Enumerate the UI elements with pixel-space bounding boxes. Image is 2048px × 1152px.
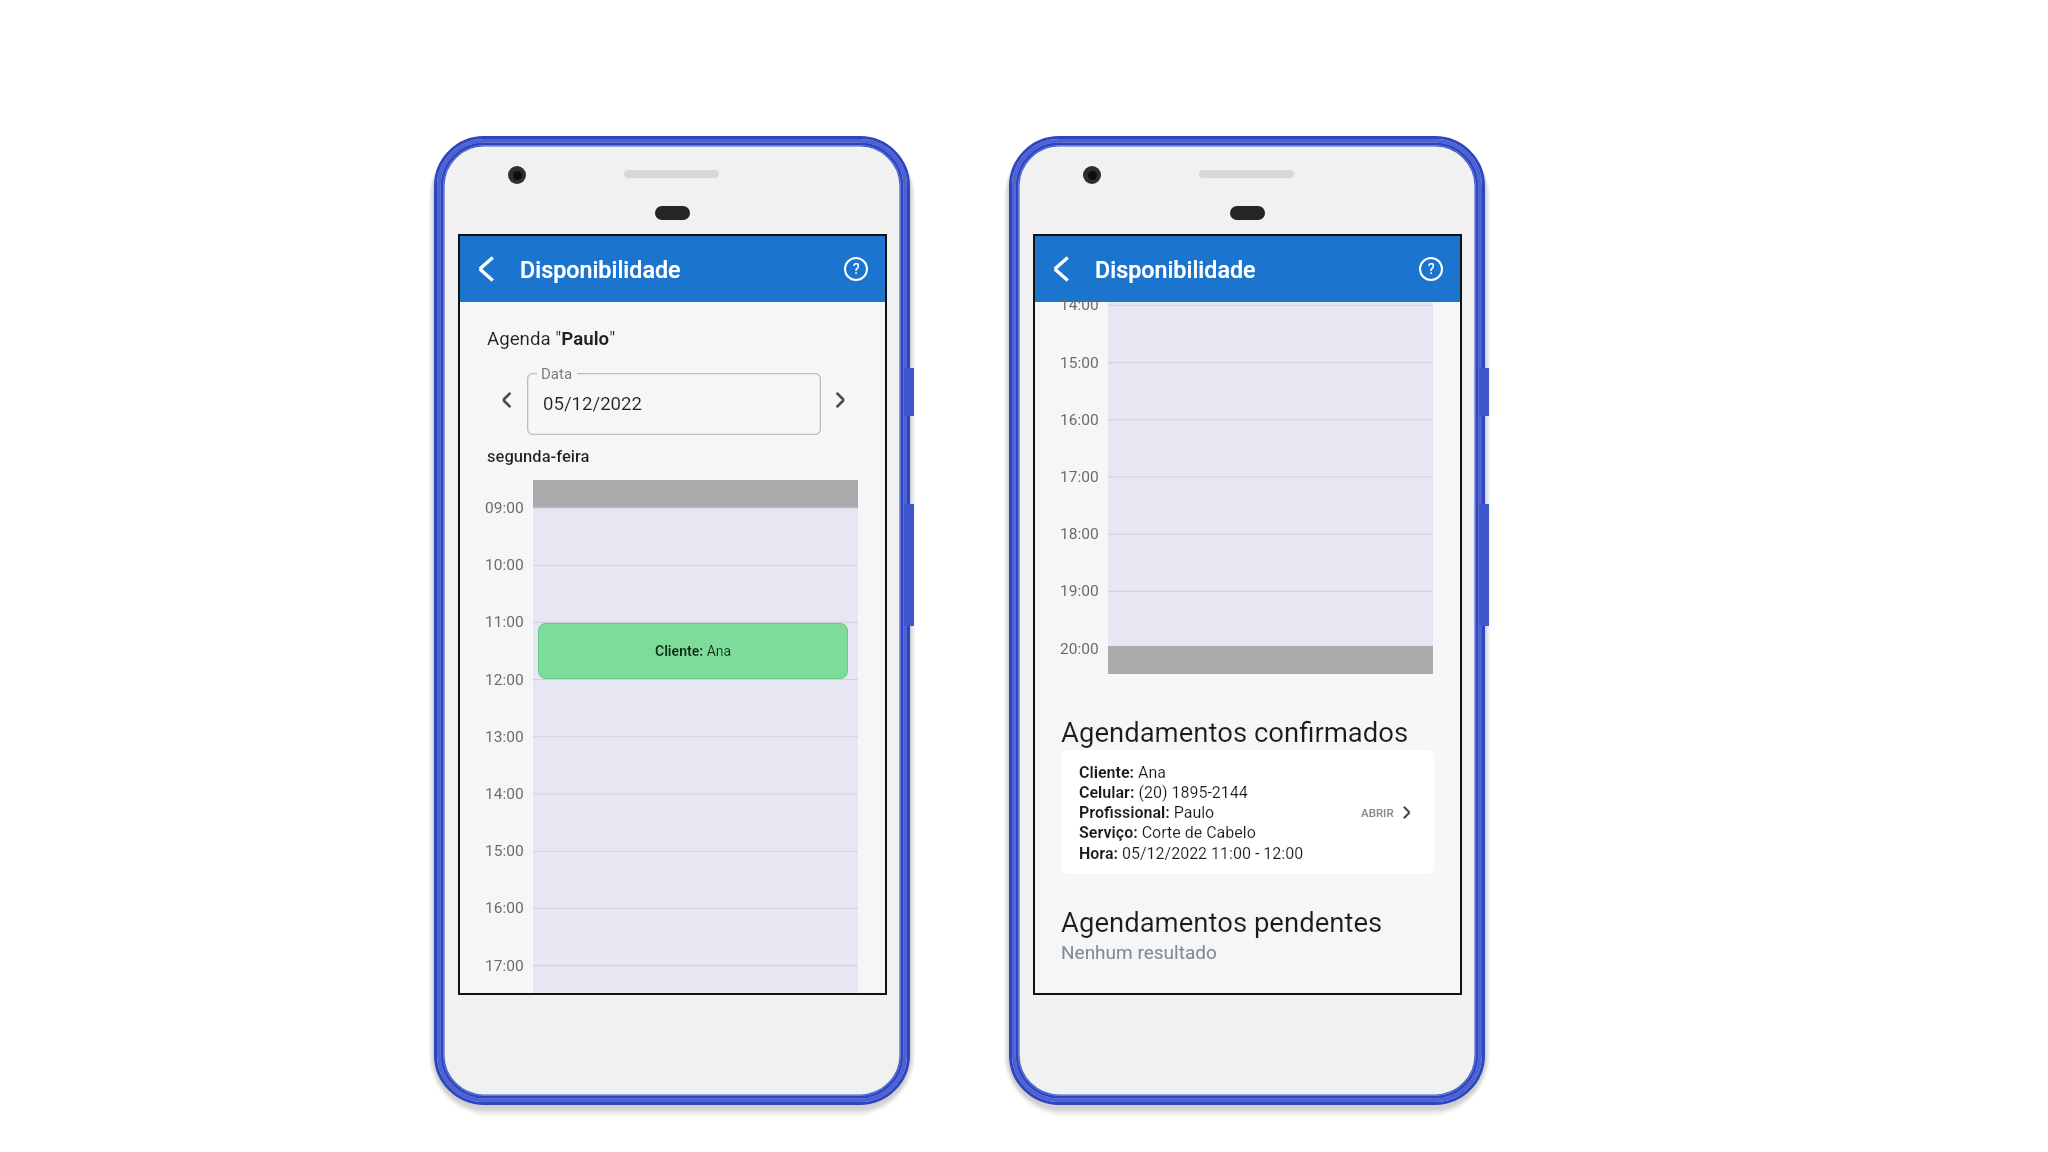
button[interactable]: Cliente: Ana bbox=[538, 623, 848, 679]
staticText: 18:00 bbox=[1060, 525, 1099, 543]
button[interactable]: Back bbox=[464, 247, 508, 291]
button[interactable]: 05/12/2022 bbox=[527, 373, 821, 435]
staticText: ABRIR bbox=[1361, 806, 1394, 819]
staticText: 17:00 bbox=[1060, 468, 1099, 486]
staticText: 14:00 bbox=[1060, 296, 1099, 314]
staticText: Disponibilidade bbox=[1095, 256, 1256, 283]
staticText: segunda-feira bbox=[487, 447, 590, 466]
staticText: Serviço: Corte de Cabelo bbox=[1079, 823, 1256, 842]
staticText: 10:00 bbox=[485, 556, 524, 574]
button[interactable]: Help bbox=[836, 249, 876, 289]
staticText: Data bbox=[541, 365, 573, 383]
staticText: 16:00 bbox=[1060, 411, 1099, 429]
staticText: 17:00 bbox=[485, 957, 524, 975]
staticText: Agendamentos pendentes bbox=[1061, 906, 1383, 938]
staticText: Profissional: Paulo bbox=[1079, 803, 1215, 822]
button[interactable]: Previous day bbox=[485, 378, 529, 422]
staticText: ? bbox=[853, 261, 860, 277]
staticText: Disponibilidade bbox=[520, 256, 681, 283]
staticText: 20:00 bbox=[1060, 640, 1099, 658]
button[interactable]: Back bbox=[1039, 247, 1083, 291]
staticText: Celular: (20) 1895-2144 bbox=[1079, 783, 1248, 802]
staticText: 12:00 bbox=[485, 671, 524, 689]
button[interactable]: Help bbox=[1411, 249, 1451, 289]
staticText: 19:00 bbox=[1060, 582, 1099, 600]
staticText: Cliente: Ana bbox=[655, 643, 732, 659]
button[interactable]: Cliente: Ana bbox=[1061, 750, 1434, 874]
button[interactable]: Next day bbox=[818, 378, 862, 422]
button[interactable]: ABRIR bbox=[1355, 797, 1434, 828]
staticText: ? bbox=[1428, 261, 1435, 277]
staticText: 14:00 bbox=[485, 785, 524, 803]
staticText: 15:00 bbox=[485, 842, 524, 860]
staticText: 16:00 bbox=[485, 899, 524, 917]
staticText: 05/12/2022 bbox=[543, 393, 642, 415]
staticText: 15:00 bbox=[1060, 354, 1099, 372]
staticText: Hora: 05/12/2022 11:00 - 12:00 bbox=[1079, 844, 1304, 863]
staticText: Cliente: Ana bbox=[1079, 763, 1167, 782]
staticText: 11:00 bbox=[485, 613, 524, 631]
staticText: 09:00 bbox=[485, 499, 524, 517]
staticText: 13:00 bbox=[485, 728, 524, 746]
staticText: Agendamentos confirmados bbox=[1061, 716, 1409, 748]
staticText: Agenda "Paulo" bbox=[487, 328, 616, 350]
staticText: Nenhum resultado bbox=[1061, 941, 1217, 963]
